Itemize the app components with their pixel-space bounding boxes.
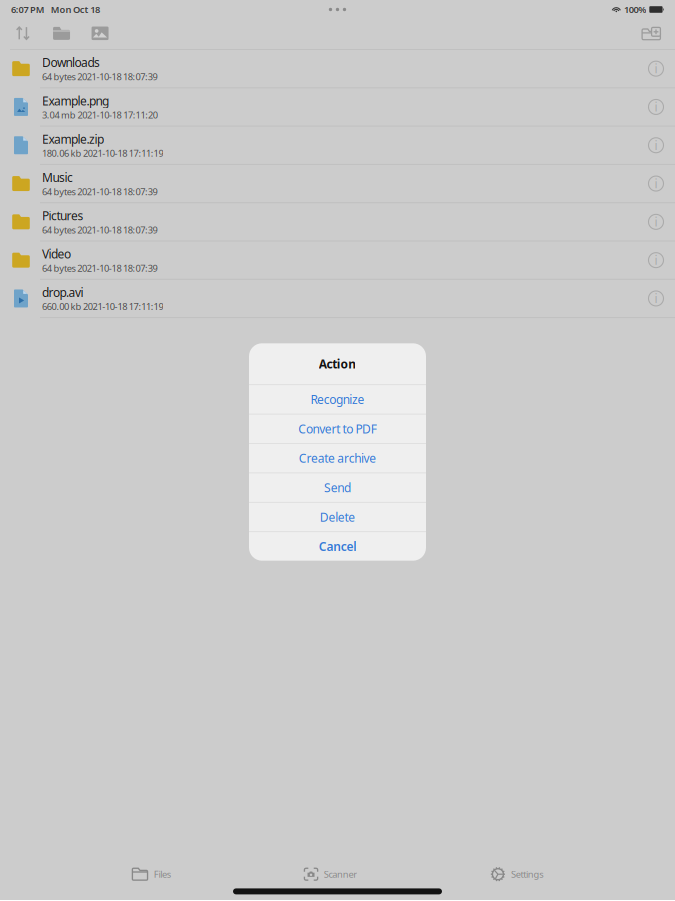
staticText: Scanner [324,868,357,880]
staticText: 6:07 PM [11,3,45,16]
button[interactable]: Recognize [249,384,426,414]
button[interactable]: Example.png [0,88,675,127]
button[interactable]: Video [0,241,675,280]
staticText: Recognize [310,391,365,407]
staticText: 64 bytes 2021-10-18 18:07:39 [42,185,158,198]
staticText: i [654,137,657,153]
staticText: Create archive [299,450,376,466]
staticText: Cancel [319,538,356,554]
button[interactable]: Files [132,865,171,883]
staticText: i [654,99,657,115]
button[interactable]: Scanner [304,865,357,883]
staticText: Send [324,480,351,495]
staticText: Example.png [42,93,109,109]
staticText: i [654,290,657,306]
staticText: Delete [320,509,355,525]
button[interactable]: Photos [81,19,119,47]
staticText: Music [42,169,73,185]
staticText: i [654,176,657,191]
staticText: 64 bytes 2021-10-18 18:07:39 [42,262,158,274]
button[interactable]: Sort [4,19,42,47]
button[interactable]: Music [0,165,675,203]
staticText: i [654,252,657,268]
staticText: 180.06 kb 2021-10-18 17:11:19 [42,147,163,159]
staticText: i [654,61,657,77]
staticText: Settings [511,868,543,880]
staticText: i [654,214,657,230]
staticText: 3.04 mb 2021-10-18 17:11:20 [42,109,158,121]
button[interactable]: Downloads [0,50,675,88]
button[interactable]: Send [249,472,426,502]
staticText: 64 bytes 2021-10-18 18:07:39 [42,70,158,83]
staticText: Files [154,868,171,880]
staticText: Mon Oct 18 [51,3,100,16]
staticText: Pictures [42,208,83,224]
staticText: Video [42,246,71,262]
button[interactable]: drop.avi [0,280,675,318]
button[interactable]: Cancel [249,531,426,561]
button[interactable]: Create archive [249,443,426,472]
button[interactable]: Folders [42,19,81,47]
staticText: Example.zip [42,131,104,147]
staticText: drop.avi [42,284,83,300]
button[interactable]: Example.zip [0,127,675,165]
button[interactable]: Pictures [0,203,675,241]
button[interactable]: Settings [490,865,543,883]
staticText: 64 bytes 2021-10-18 18:07:39 [42,224,158,236]
button[interactable]: Delete [249,502,426,531]
staticText: Convert to PDF [298,421,377,437]
staticText: Downloads [42,54,100,70]
button[interactable]: New folder [632,19,670,47]
staticText: Action [319,356,356,372]
staticText: 100% [624,3,646,16]
staticText: 660.00 kb 2021-10-18 17:11:19 [42,300,163,313]
button[interactable]: Convert to PDF [249,414,426,443]
